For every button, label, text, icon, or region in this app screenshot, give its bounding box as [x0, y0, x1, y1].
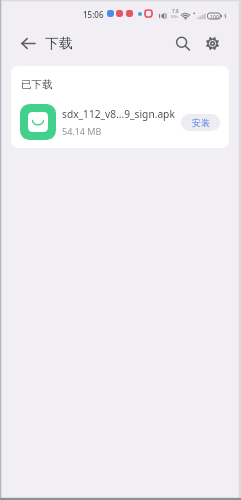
- staticText: sdx_112_v8...9_sign.apk: [62, 107, 175, 121]
- button[interactable]: Settings: [198, 29, 226, 57]
- button[interactable]: Search: [168, 29, 196, 57]
- staticText: M/s: [171, 14, 179, 20]
- staticText: 安装: [192, 117, 210, 128]
- staticText: 54.14 MB: [62, 125, 102, 137]
- button[interactable]: 安装: [181, 114, 220, 131]
- staticText: 下载: [45, 35, 73, 52]
- staticText: 15:06: [83, 9, 104, 20]
- button[interactable]: sdx_112_v8...9_sign.apk: [20, 104, 220, 140]
- staticText: 7.8: [172, 8, 179, 14]
- button[interactable]: Back: [14, 29, 42, 57]
- staticText: 已下载: [21, 78, 53, 91]
- staticText: 100: [210, 13, 219, 20]
